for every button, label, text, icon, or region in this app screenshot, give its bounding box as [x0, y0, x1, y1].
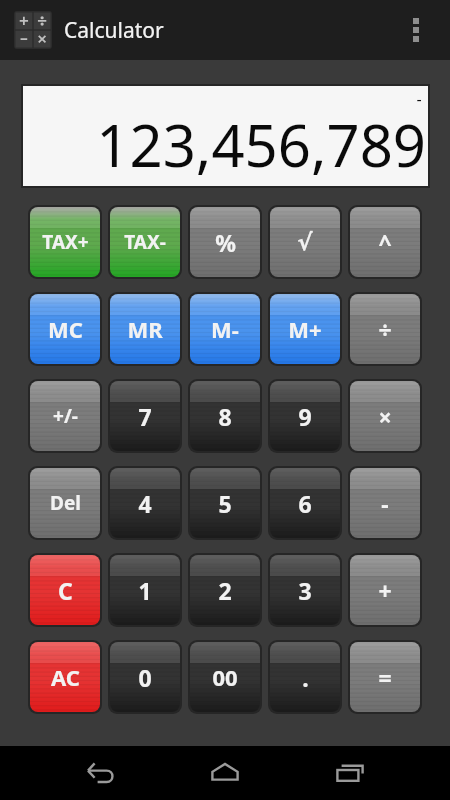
- staticText: TAX-: [124, 229, 166, 255]
- staticText: ÷: [378, 314, 392, 345]
- button[interactable]: TAX+: [30, 207, 100, 277]
- staticText: 5: [218, 488, 232, 519]
- other: App icon: [14, 11, 52, 49]
- staticText: √: [297, 229, 313, 256]
- button[interactable]: C: [30, 555, 100, 625]
- button[interactable]: Home: [195, 746, 255, 800]
- button[interactable]: More options: [392, 6, 440, 54]
- staticText: 00: [212, 662, 238, 692]
- button[interactable]: 6: [270, 468, 340, 538]
- staticText: 6: [298, 488, 312, 519]
- button[interactable]: 2: [190, 555, 260, 625]
- button[interactable]: 5: [190, 468, 260, 538]
- staticText: C: [58, 575, 73, 606]
- staticText: TAX+: [42, 229, 89, 255]
- staticText: =: [378, 662, 392, 693]
- staticText: 123,456,789: [96, 105, 426, 184]
- button[interactable]: 4: [110, 468, 180, 538]
- staticText: .: [302, 662, 309, 693]
- staticText: 4: [138, 488, 152, 519]
- button[interactable]: 7: [110, 381, 180, 451]
- button[interactable]: ÷: [350, 294, 420, 364]
- staticText: -: [381, 488, 389, 519]
- button[interactable]: √: [270, 207, 340, 277]
- button[interactable]: TAX-: [110, 207, 180, 277]
- staticText: ×: [378, 401, 392, 432]
- staticText: +: [378, 575, 392, 606]
- staticText: 8: [218, 401, 232, 432]
- button[interactable]: ^: [350, 207, 420, 277]
- staticText: M-: [211, 314, 239, 344]
- button[interactable]: Del: [30, 468, 100, 538]
- staticText: +/-: [53, 403, 78, 429]
- button[interactable]: MC: [30, 294, 100, 364]
- button[interactable]: M+: [270, 294, 340, 364]
- staticText: Del: [50, 490, 81, 516]
- button[interactable]: 8: [190, 381, 260, 451]
- staticText: 1: [138, 575, 152, 606]
- button[interactable]: Back: [70, 746, 130, 800]
- staticText: AC: [51, 662, 80, 692]
- button[interactable]: 00: [190, 642, 260, 712]
- button[interactable]: 3: [270, 555, 340, 625]
- staticText: 2: [218, 575, 232, 606]
- button[interactable]: 1: [110, 555, 180, 625]
- button[interactable]: AC: [30, 642, 100, 712]
- staticText: 9: [298, 401, 312, 432]
- button[interactable]: ×: [350, 381, 420, 451]
- button[interactable]: =: [350, 642, 420, 712]
- staticText: -: [416, 88, 422, 110]
- button[interactable]: 9: [270, 381, 340, 451]
- button[interactable]: .: [270, 642, 340, 712]
- staticText: 7: [138, 401, 152, 432]
- button[interactable]: +/-: [30, 381, 100, 451]
- button[interactable]: %: [190, 207, 260, 277]
- button[interactable]: MR: [110, 294, 180, 364]
- staticText: MC: [48, 314, 83, 344]
- button[interactable]: 0: [110, 642, 180, 712]
- button[interactable]: +: [350, 555, 420, 625]
- staticText: %: [215, 227, 236, 258]
- button[interactable]: Recent apps: [320, 746, 380, 800]
- staticText: 0: [138, 662, 152, 693]
- staticText: 3: [298, 575, 312, 606]
- button[interactable]: M-: [190, 294, 260, 364]
- button[interactable]: -: [350, 468, 420, 538]
- staticText: M+: [288, 314, 322, 344]
- staticText: ^: [378, 227, 392, 258]
- staticText: MR: [127, 314, 163, 344]
- staticText: Calculator: [64, 16, 164, 45]
